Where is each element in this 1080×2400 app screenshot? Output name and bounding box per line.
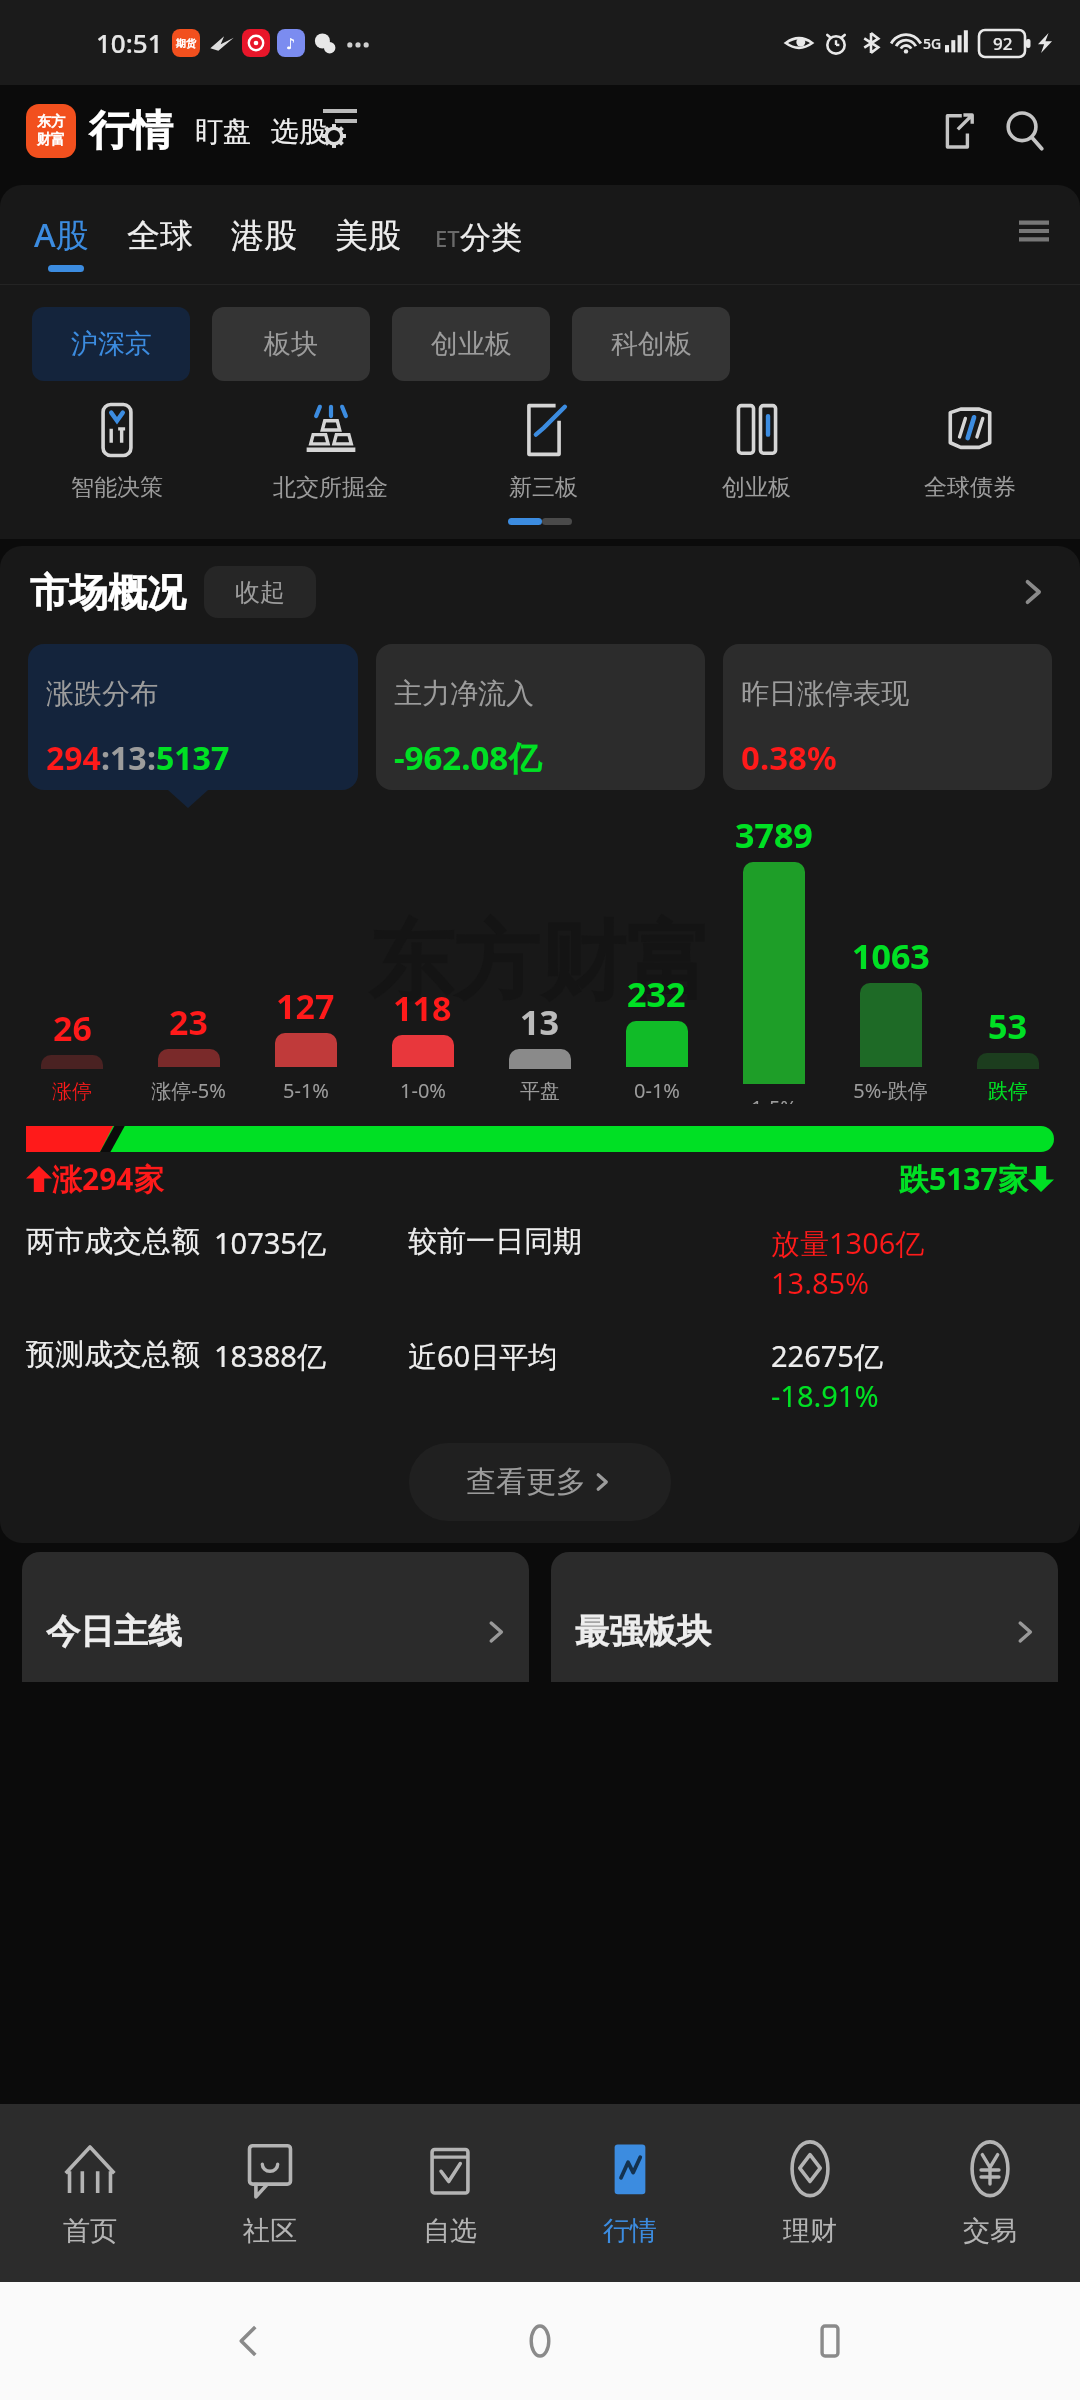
staticText: 财富 bbox=[37, 131, 65, 149]
staticText: 127 bbox=[276, 983, 335, 1029]
button[interactable]: 创业板 bbox=[392, 307, 550, 381]
staticText: 沪深京 bbox=[71, 327, 152, 361]
staticText: 港股 bbox=[231, 215, 297, 257]
staticText: 东方财富 bbox=[368, 908, 712, 1016]
staticText: 13 bbox=[110, 736, 147, 780]
staticText: 放量1306亿 bbox=[771, 1223, 925, 1263]
button[interactable]: 主力净流入 bbox=[376, 644, 705, 790]
button[interactable]: A股 bbox=[34, 212, 89, 257]
staticText: 全球债券 bbox=[924, 473, 1016, 502]
button[interactable]: 智能决策 bbox=[10, 401, 224, 502]
staticText: 涨294家 bbox=[52, 1158, 164, 1199]
button[interactable]: 新三板 bbox=[437, 401, 650, 502]
staticText: 23 bbox=[169, 999, 208, 1045]
staticText: 东方 bbox=[37, 113, 65, 131]
button[interactable]: Back bbox=[210, 2301, 290, 2381]
staticText: -962.08亿 bbox=[394, 735, 542, 780]
button[interactable]: 全球债券 bbox=[863, 401, 1076, 502]
button[interactable]: 东方 bbox=[26, 104, 76, 158]
button[interactable]: ET bbox=[435, 218, 522, 257]
staticText: 分类 bbox=[460, 218, 522, 257]
staticText: 53 bbox=[988, 1003, 1027, 1049]
button[interactable]: Search bbox=[996, 102, 1054, 160]
staticText: ET bbox=[435, 223, 460, 253]
button[interactable]: 港股 bbox=[231, 215, 297, 257]
staticText: 22675亿 bbox=[771, 1336, 883, 1376]
staticText: 5%-跌停 bbox=[853, 1077, 928, 1104]
button[interactable]: 最强板块 bbox=[551, 1552, 1058, 1682]
button[interactable]: 北交所掘金 bbox=[224, 401, 437, 502]
staticText: 今日主线 bbox=[46, 1610, 182, 1653]
button[interactable]: 社区 bbox=[180, 2104, 360, 2282]
staticText: 自选 bbox=[423, 2214, 477, 2248]
button[interactable]: 首页 bbox=[0, 2104, 180, 2282]
staticText: 较前一日同期 bbox=[408, 1223, 582, 1260]
button[interactable]: 市场概况 bbox=[30, 566, 1050, 618]
staticText: 北交所掘金 bbox=[273, 473, 388, 502]
staticText: 92 bbox=[993, 32, 1013, 55]
button[interactable]: 选股 bbox=[271, 114, 353, 149]
staticText: 创业板 bbox=[722, 473, 791, 502]
button[interactable]: Home bbox=[500, 2301, 580, 2381]
button[interactable]: 昨日涨停表现 bbox=[723, 644, 1052, 790]
staticText: 昨日涨停表现 bbox=[741, 676, 909, 711]
staticText: 232 bbox=[627, 971, 686, 1017]
button[interactable]: 创业板 bbox=[650, 401, 863, 502]
staticText: 1-5% bbox=[751, 1094, 797, 1104]
staticText: 创业板 bbox=[431, 327, 512, 361]
button[interactable]: 查看更多 bbox=[409, 1443, 671, 1521]
staticText: 近60日平均 bbox=[408, 1336, 558, 1376]
staticText: 主力净流入 bbox=[394, 676, 534, 711]
button[interactable]: 科创板 bbox=[572, 307, 730, 381]
staticText: 涨停-5% bbox=[151, 1077, 226, 1104]
staticText: 1063 bbox=[852, 933, 930, 979]
staticText: 0.38% bbox=[741, 735, 837, 780]
staticText: 3789 bbox=[735, 812, 813, 858]
staticText: 板块 bbox=[264, 327, 318, 361]
staticText: 美股 bbox=[335, 215, 401, 257]
staticText: 智能决策 bbox=[71, 473, 163, 502]
staticText: 期货 bbox=[176, 37, 196, 50]
staticText: 首页 bbox=[63, 2214, 117, 2248]
staticText: 5G bbox=[923, 34, 942, 53]
button[interactable]: 今日主线 bbox=[22, 1552, 529, 1682]
button[interactable]: Share bbox=[928, 102, 986, 160]
staticText: : bbox=[147, 736, 156, 780]
staticText: 交易 bbox=[963, 2214, 1017, 2248]
button[interactable]: 盯盘 bbox=[195, 114, 251, 149]
button[interactable]: 交易 bbox=[900, 2104, 1080, 2282]
button[interactable]: 行情 bbox=[540, 2104, 720, 2282]
button[interactable]: Recents bbox=[790, 2301, 870, 2381]
staticText: 0-1% bbox=[634, 1077, 680, 1104]
button[interactable]: 板块 bbox=[212, 307, 370, 381]
staticText: 跌停 bbox=[988, 1079, 1028, 1104]
staticText: 294 bbox=[46, 736, 101, 780]
staticText: 两市成交总额 bbox=[26, 1223, 200, 1260]
staticText: 选股 bbox=[271, 114, 327, 149]
button[interactable]: 行情 bbox=[89, 105, 173, 158]
button[interactable]: 理财 bbox=[720, 2104, 900, 2282]
button[interactable]: 美股 bbox=[335, 215, 401, 257]
button[interactable]: 全球 bbox=[127, 215, 193, 257]
staticText: 5137 bbox=[156, 736, 230, 780]
staticText: A股 bbox=[34, 212, 89, 257]
button[interactable]: 收起 bbox=[204, 566, 316, 618]
staticText: 查看更多 bbox=[466, 1463, 586, 1501]
staticText: 118 bbox=[393, 985, 452, 1031]
staticText: 10735亿 bbox=[214, 1223, 326, 1263]
button[interactable]: 涨跌分布 bbox=[28, 644, 358, 790]
staticText: 全球 bbox=[127, 215, 193, 257]
staticText: 科创板 bbox=[611, 327, 692, 361]
button[interactable]: 沪深京 bbox=[32, 307, 190, 381]
staticText: 收起 bbox=[235, 577, 285, 608]
button[interactable]: Menu bbox=[1008, 205, 1060, 257]
staticText: 13.85% bbox=[771, 1263, 870, 1302]
button[interactable]: 自选 bbox=[360, 2104, 540, 2282]
staticText: -18.91% bbox=[771, 1376, 879, 1415]
staticText: 最强板块 bbox=[575, 1610, 711, 1653]
staticText: 涨停 bbox=[52, 1079, 92, 1104]
staticText: 13 bbox=[520, 999, 559, 1045]
staticText: 跌5137家 bbox=[899, 1158, 1028, 1199]
staticText: 市场概况 bbox=[30, 568, 186, 617]
staticText: 平盘 bbox=[520, 1079, 560, 1104]
